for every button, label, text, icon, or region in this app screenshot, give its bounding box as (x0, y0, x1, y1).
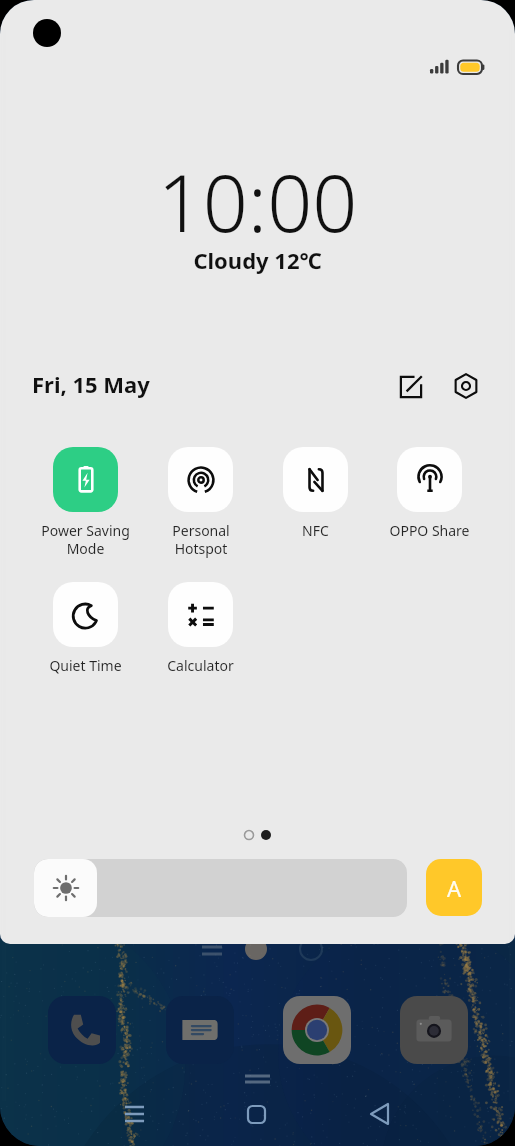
button[interactable]: Camera (400, 996, 468, 1064)
button[interactable]: Phone (48, 996, 116, 1064)
staticText: Calculator (167, 656, 234, 675)
staticText: OPPO Share (389, 521, 470, 540)
staticText: A (447, 873, 462, 903)
button[interactable]: Edit tiles (391, 367, 431, 407)
button[interactable]: Calculator (143, 582, 258, 675)
staticText: Cloudy 12℃ (0, 245, 515, 275)
button[interactable]: Chrome (283, 996, 351, 1064)
staticText: Personal Hotspot (172, 521, 230, 558)
button[interactable]: NFC (258, 447, 373, 540)
button[interactable]: Messages (166, 996, 234, 1064)
button[interactable]: Brightness (34, 859, 407, 917)
staticText: Fri, 15 May (32, 369, 150, 399)
button[interactable]: Auto brightness (426, 859, 482, 916)
staticText: 10:00 (0, 148, 515, 256)
button[interactable]: Settings (446, 366, 486, 406)
button[interactable]: Power Saving Mode (28, 447, 143, 558)
button[interactable]: Personal Hotspot (143, 447, 258, 558)
staticText: Quiet Time (49, 656, 122, 675)
button[interactable]: Quiet Time (28, 582, 143, 675)
button[interactable]: OPPO Share (372, 447, 487, 540)
staticText: Power Saving Mode (41, 521, 130, 558)
staticText: NFC (302, 521, 329, 540)
